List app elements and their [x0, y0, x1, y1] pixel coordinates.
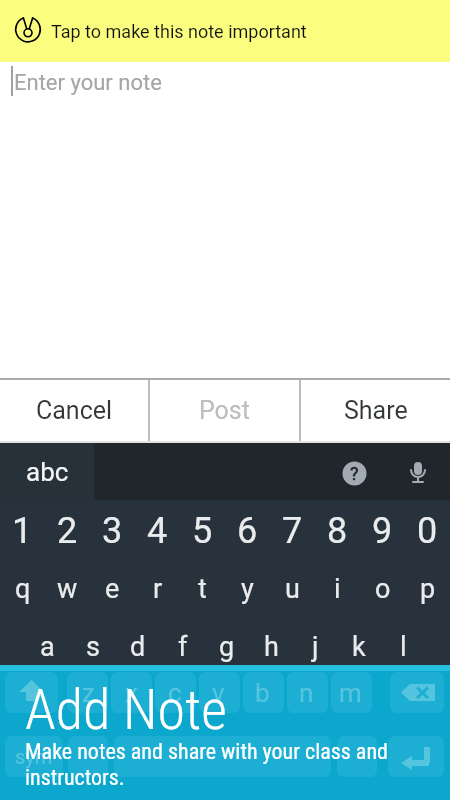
- staticText: 6: [237, 510, 258, 552]
- staticText: a: [40, 631, 55, 663]
- staticText: m: [339, 678, 362, 708]
- staticText: Tap to make this note important: [51, 21, 307, 42]
- staticText: s: [86, 631, 100, 663]
- button[interactable]: a: [25, 618, 70, 676]
- staticText: abc: [26, 457, 69, 487]
- staticText: Enter your note: [14, 70, 162, 96]
- staticText: p: [420, 573, 436, 605]
- button[interactable]: q: [0, 560, 45, 618]
- button[interactable]: Cancel: [0, 380, 148, 441]
- staticText: c: [168, 678, 182, 708]
- button[interactable]: Tap to make this note important: [0, 0, 450, 62]
- staticText: 5: [192, 510, 213, 552]
- button[interactable]: e: [90, 560, 135, 618]
- button[interactable]: 8: [315, 502, 360, 560]
- button[interactable]: w: [45, 560, 90, 618]
- staticText: q: [15, 573, 31, 605]
- button[interactable]: l: [381, 618, 425, 676]
- staticText: 2: [57, 510, 78, 552]
- staticText: w: [57, 573, 78, 605]
- button[interactable]: 7: [270, 502, 315, 560]
- staticText: l: [400, 631, 407, 663]
- button[interactable]: 5: [180, 502, 225, 560]
- button[interactable]: r: [135, 560, 180, 618]
- staticText: 3: [102, 510, 123, 552]
- staticText: u: [285, 573, 300, 605]
- staticText: z: [82, 678, 95, 708]
- staticText: d: [130, 631, 146, 663]
- staticText: n: [299, 678, 314, 708]
- staticText: sym: [15, 745, 53, 768]
- button[interactable]: 9: [360, 502, 405, 560]
- staticText: e: [105, 573, 120, 605]
- staticText: Post: [199, 396, 250, 425]
- button[interactable]: s: [70, 618, 115, 676]
- staticText: k: [352, 631, 366, 663]
- button[interactable]: p: [405, 560, 450, 618]
- staticText: 0: [417, 510, 438, 552]
- staticText: o: [375, 573, 391, 605]
- button[interactable]: o: [360, 560, 405, 618]
- staticText: 8: [327, 510, 348, 552]
- staticText: v: [212, 678, 225, 708]
- button[interactable]: 0: [405, 502, 450, 560]
- button[interactable]: Add Note: [25, 677, 227, 743]
- button[interactable]: abc: [0, 443, 94, 500]
- staticText: b: [255, 678, 270, 708]
- button[interactable]: Share: [301, 380, 450, 441]
- button[interactable]: [406, 461, 430, 485]
- button[interactable]: d: [115, 618, 160, 676]
- staticText: h: [264, 631, 279, 663]
- button[interactable]: i: [315, 560, 360, 618]
- staticText: f: [178, 631, 188, 663]
- button[interactable]: ?: [341, 460, 368, 487]
- button[interactable]: h: [249, 618, 293, 676]
- staticText: 7: [282, 510, 303, 552]
- button[interactable]: 4: [135, 502, 180, 560]
- staticText: i: [334, 573, 341, 605]
- button[interactable]: 3: [90, 502, 135, 560]
- button[interactable]: j: [293, 618, 337, 676]
- staticText: x: [125, 678, 138, 708]
- button[interactable]: u: [270, 560, 315, 618]
- button[interactable]: 6: [225, 502, 270, 560]
- button[interactable]: k: [337, 618, 381, 676]
- staticText: Share: [344, 396, 408, 425]
- button[interactable]: Post: [150, 380, 299, 441]
- staticText: t: [198, 573, 207, 605]
- button[interactable]: g: [205, 618, 249, 676]
- staticText: 4: [147, 510, 168, 552]
- staticText: Make notes and share with your class and…: [25, 739, 388, 790]
- staticText: 9: [372, 510, 393, 552]
- button[interactable]: t: [180, 560, 225, 618]
- button[interactable]: 1: [0, 502, 45, 560]
- staticText: g: [219, 631, 235, 663]
- button[interactable]: f: [160, 618, 205, 676]
- staticText: r: [153, 573, 163, 605]
- staticText: y: [241, 573, 254, 605]
- staticText: 1: [12, 510, 33, 552]
- button[interactable]: 2: [45, 502, 90, 560]
- staticText: ?: [350, 463, 359, 484]
- button[interactable]: y: [225, 560, 270, 618]
- staticText: j: [312, 631, 319, 663]
- staticText: Cancel: [36, 396, 113, 425]
